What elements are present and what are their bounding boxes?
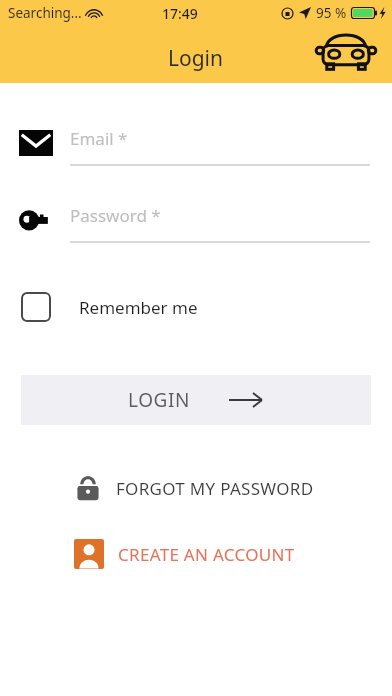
button[interactable]: CREATE AN ACCOUNT (0, 532, 392, 576)
button[interactable]: Vehicle (312, 25, 380, 77)
staticText: Searching... (8, 4, 82, 22)
staticText: LOGIN (128, 387, 191, 413)
button[interactable]: Password * (0, 197, 392, 243)
staticText: 95 % (316, 4, 347, 22)
staticText: FORGOT MY PASSWORD (116, 477, 314, 500)
staticText: Password * (70, 204, 161, 227)
button[interactable]: LOGIN (21, 375, 371, 425)
button[interactable]: Email * (0, 120, 392, 166)
button[interactable]: FORGOT MY PASSWORD (0, 466, 392, 510)
staticText: Email * (70, 127, 128, 150)
button[interactable]: Remember me (0, 285, 392, 329)
staticText: CREATE AN ACCOUNT (118, 543, 295, 566)
staticText: 17:49 (162, 4, 198, 23)
staticText: Login (168, 44, 224, 73)
staticText: Remember me (79, 296, 198, 319)
